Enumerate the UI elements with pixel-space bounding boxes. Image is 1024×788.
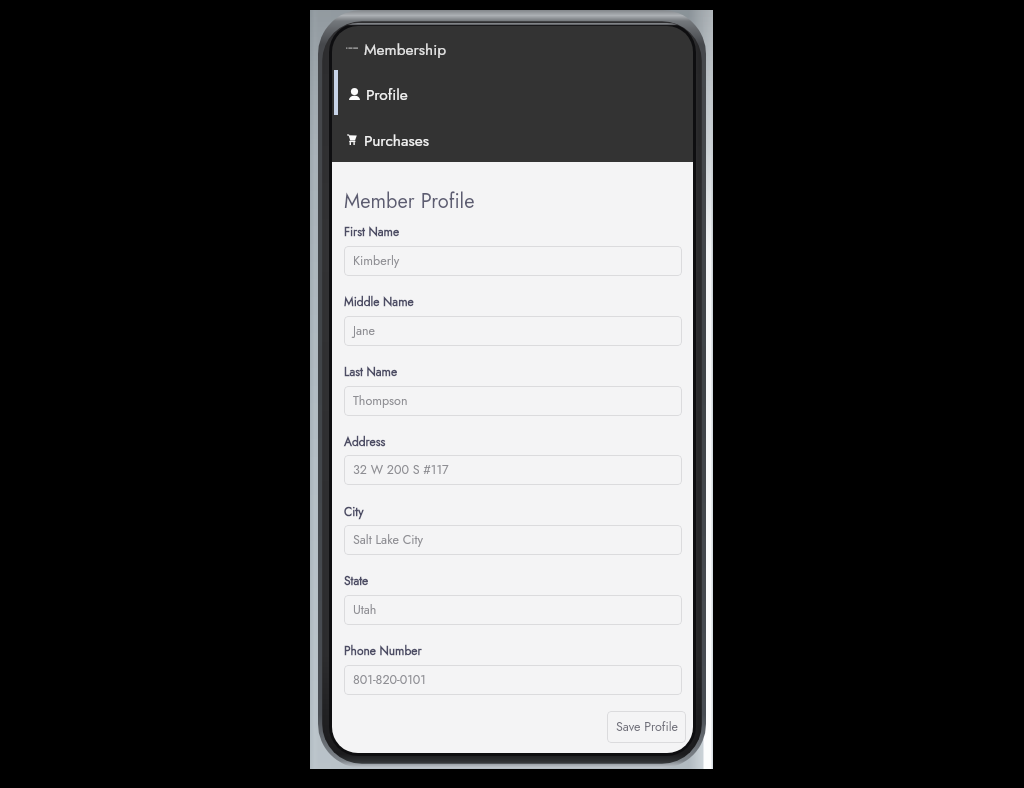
button[interactable]: Profile bbox=[332, 71, 693, 116]
staticText: Utah bbox=[353, 601, 377, 619]
button[interactable]: Membership bbox=[332, 26, 693, 71]
staticText: 801-820-0101 bbox=[353, 671, 426, 689]
button[interactable]: Salt Lake City bbox=[344, 525, 682, 555]
staticText: Member Profile bbox=[344, 187, 475, 216]
staticText: Profile bbox=[366, 83, 408, 105]
staticText: Jane bbox=[353, 322, 376, 340]
button[interactable]: Save Profile bbox=[607, 711, 686, 743]
staticText: First Name bbox=[344, 223, 400, 240]
staticText: Thompson bbox=[353, 392, 408, 410]
staticText: Middle Name bbox=[344, 293, 414, 310]
button[interactable]: Purchases bbox=[332, 117, 693, 162]
staticText: Phone Number bbox=[344, 642, 422, 659]
button[interactable]: Thompson bbox=[344, 386, 682, 416]
staticText: City bbox=[344, 503, 364, 520]
staticText: State bbox=[344, 572, 369, 589]
staticText: Save Profile bbox=[616, 718, 678, 736]
button[interactable]: 801-820-0101 bbox=[344, 665, 682, 695]
button[interactable]: Kimberly bbox=[344, 246, 682, 276]
staticText: Membership bbox=[364, 38, 447, 60]
button[interactable]: Jane bbox=[344, 316, 682, 346]
staticText: Kimberly bbox=[353, 252, 400, 270]
staticText: 32 W 200 S #117 bbox=[353, 461, 449, 479]
staticText: Address bbox=[344, 433, 386, 450]
staticText: Last Name bbox=[344, 363, 398, 380]
staticText: Purchases bbox=[364, 129, 429, 151]
staticText: Salt Lake City bbox=[353, 531, 423, 549]
button[interactable]: Utah bbox=[344, 595, 682, 625]
button[interactable]: 32 W 200 S #117 bbox=[344, 455, 682, 485]
